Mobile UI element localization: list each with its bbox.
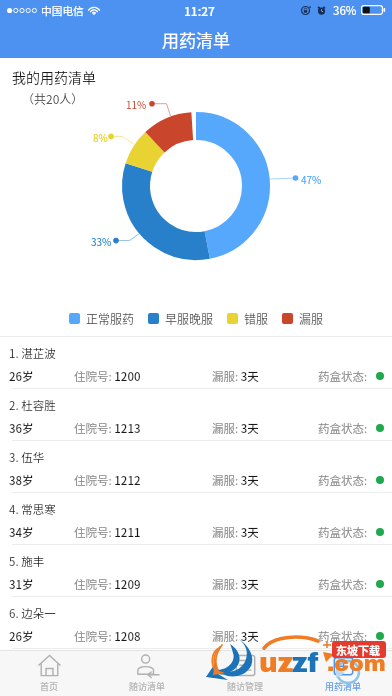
other: Follow-up list bbox=[136, 654, 159, 677]
staticText: .com bbox=[327, 652, 386, 676]
button[interactable]: Home bbox=[0, 651, 98, 696]
staticText: 6. 边朵一 bbox=[9, 605, 56, 622]
staticText: 正常服药 bbox=[86, 310, 135, 327]
other: Home bbox=[38, 654, 61, 677]
staticText: 漏服: 3天 bbox=[212, 524, 259, 541]
staticText: 38岁 bbox=[9, 472, 34, 489]
staticText: 药盒状态: bbox=[318, 576, 368, 593]
staticText: 1. 湛芷波 bbox=[9, 345, 56, 362]
staticText: 住院号: 1213 bbox=[74, 420, 141, 437]
staticText: 36% bbox=[333, 2, 357, 19]
staticText: 住院号: 1208 bbox=[74, 628, 141, 645]
staticText: 住院号: 1209 bbox=[74, 576, 141, 593]
button[interactable]: 错服 bbox=[227, 310, 269, 327]
staticText: 11% bbox=[126, 97, 147, 111]
staticText: 漏服: 3天 bbox=[212, 368, 259, 385]
staticText: 药盒状态: bbox=[318, 628, 368, 645]
staticText: 漏服: 3天 bbox=[212, 628, 259, 645]
staticText: uz bbox=[259, 647, 294, 677]
button[interactable]: 早服晚服 bbox=[148, 310, 214, 327]
staticText: 8% bbox=[93, 130, 108, 144]
staticText: 随访管理 bbox=[227, 680, 264, 693]
staticText: 用药清单 bbox=[325, 680, 362, 693]
button[interactable]: 用药清单 bbox=[294, 651, 392, 696]
staticText: 中国电信 bbox=[41, 3, 84, 18]
staticText: 2. 杜容胜 bbox=[9, 397, 56, 414]
staticText: 药盒状态: bbox=[318, 524, 368, 541]
button[interactable]: 1. 湛芷波 bbox=[0, 337, 392, 389]
staticText: 住院号: 1212 bbox=[74, 472, 141, 489]
staticText: 东坡下载 bbox=[336, 642, 380, 658]
staticText: 漏服: 3天 bbox=[212, 576, 259, 593]
staticText: 4. 常思寒 bbox=[9, 501, 56, 518]
staticText: 漏服 bbox=[299, 310, 324, 327]
staticText: 11:27 bbox=[184, 2, 215, 19]
staticText: 我的用药清单 bbox=[12, 67, 96, 87]
staticText: 36岁 bbox=[9, 420, 34, 437]
button[interactable]: Follow-up list bbox=[98, 651, 196, 696]
button[interactable]: 2. 杜容胜 bbox=[0, 389, 392, 441]
staticText: 药盒状态: bbox=[318, 368, 368, 385]
button[interactable]: 4. 常思寒 bbox=[0, 493, 392, 545]
staticText: 住院号: 1200 bbox=[74, 368, 141, 385]
staticText: 26岁 bbox=[9, 628, 34, 645]
staticText: 用药清单 bbox=[162, 27, 230, 52]
button[interactable]: 漏服 bbox=[282, 310, 324, 327]
button[interactable]: 3. 伍华 bbox=[0, 441, 392, 493]
staticText: 药盒状态: bbox=[318, 472, 368, 489]
staticText: 漏服: 3天 bbox=[212, 472, 259, 489]
staticText: 错服 bbox=[244, 310, 269, 327]
staticText: 随访清单 bbox=[129, 680, 166, 693]
button[interactable]: 正常服药 bbox=[69, 310, 135, 327]
button[interactable]: 6. 边朵一 bbox=[0, 597, 392, 649]
staticText: zf bbox=[292, 647, 319, 677]
staticText: 首页 bbox=[40, 680, 59, 693]
button[interactable]: 随访管理 bbox=[196, 651, 294, 696]
staticText: 31岁 bbox=[9, 576, 34, 593]
staticText: 47% bbox=[301, 172, 322, 186]
staticText: 5. 施丰 bbox=[9, 553, 45, 570]
staticText: 26岁 bbox=[9, 368, 34, 385]
staticText: 漏服: 3天 bbox=[212, 420, 259, 437]
button[interactable]: 5. 施丰 bbox=[0, 545, 392, 597]
staticText: 药盒状态: bbox=[318, 420, 368, 437]
staticText: 34岁 bbox=[9, 524, 34, 541]
staticText: 住院号: 1211 bbox=[74, 524, 141, 541]
staticText: 早服晚服 bbox=[165, 310, 214, 327]
staticText: 3. 伍华 bbox=[9, 449, 45, 466]
staticText: （共20人） bbox=[22, 90, 84, 107]
staticText: 33% bbox=[91, 234, 112, 248]
